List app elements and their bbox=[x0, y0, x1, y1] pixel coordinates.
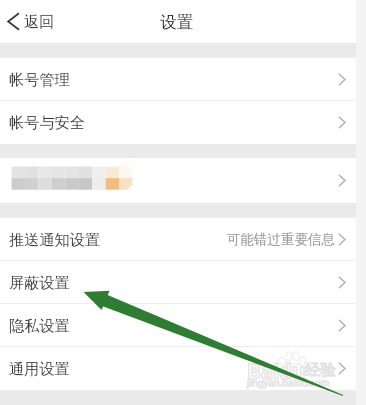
staticText: 推送通知设置 bbox=[9, 230, 101, 249]
button[interactable]: 隐私设置 bbox=[0, 304, 356, 347]
staticText: 帐号与安全 bbox=[9, 113, 85, 132]
button[interactable]: 通用设置 bbox=[0, 347, 356, 390]
staticText: 经验 bbox=[305, 360, 336, 380]
staticText: 可能错过重要信息 bbox=[227, 231, 335, 248]
staticText: 帐号管理 bbox=[9, 70, 70, 89]
button[interactable]: Account profile bbox=[0, 158, 356, 203]
staticText: 通用设置 bbox=[9, 359, 70, 378]
staticText: 返回 bbox=[24, 12, 55, 31]
button[interactable]: 帐号管理 bbox=[0, 58, 356, 101]
button[interactable]: 推送通知设置 bbox=[0, 218, 356, 261]
staticText: jingyan.baidu.com bbox=[247, 376, 330, 389]
staticText: 屏蔽设置 bbox=[9, 273, 70, 292]
button[interactable]: 帐号与安全 bbox=[0, 101, 356, 144]
staticText: 隐私设置 bbox=[9, 316, 70, 335]
other: Back bbox=[7, 12, 20, 31]
staticText: 设置 bbox=[160, 12, 194, 33]
button[interactable]: 屏蔽设置 bbox=[0, 261, 356, 304]
staticText: Baidu bbox=[247, 357, 306, 385]
button[interactable]: Back bbox=[0, 0, 65, 43]
